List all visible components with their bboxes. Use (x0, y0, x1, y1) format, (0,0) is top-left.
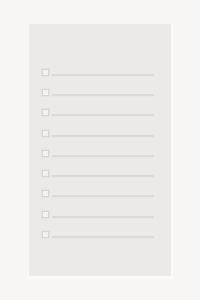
button[interactable]: Checklist item 5 (29, 143, 171, 163)
button[interactable]: Checklist item 2 (29, 82, 171, 102)
button[interactable]: Checklist item 6 (29, 163, 171, 183)
button[interactable]: Checklist item 8 (29, 204, 171, 224)
button[interactable]: Checklist item 3 (29, 102, 171, 122)
button[interactable]: Checklist item 4 (29, 123, 171, 143)
button[interactable]: Checklist item 1 (29, 62, 171, 82)
button[interactable]: Checklist item 7 (29, 183, 171, 203)
button[interactable]: Checklist item 9 (29, 224, 171, 244)
